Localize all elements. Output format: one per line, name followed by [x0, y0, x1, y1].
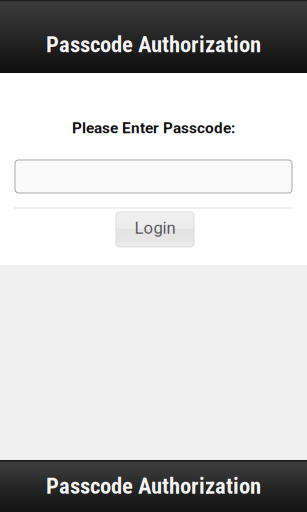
button[interactable]: Login: [116, 212, 194, 247]
staticText: Passcode Authorization: [46, 473, 261, 499]
staticText: Login: [134, 218, 175, 238]
staticText: Passcode Authorization: [46, 31, 261, 58]
staticText: Please Enter Passcode:: [72, 119, 235, 137]
